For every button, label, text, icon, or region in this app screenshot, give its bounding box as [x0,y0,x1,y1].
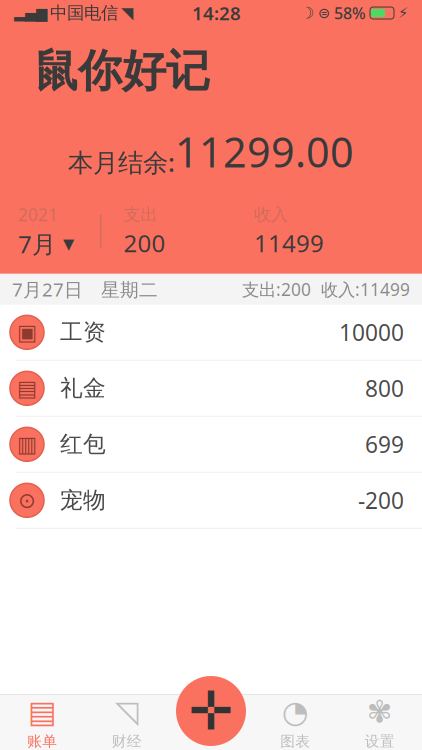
button[interactable]: ✾ [337,695,422,750]
staticText: 账单 [27,732,57,750]
staticText: 7月 [18,228,56,260]
staticText: 支出:200 收入:11499 [242,278,410,301]
button[interactable]: Add entry [176,676,246,746]
staticText: ▥ [17,432,37,456]
staticText: 财经 [112,732,142,750]
staticText: 7月27日 星期二 [12,277,158,302]
staticText: 支出 [123,204,157,225]
button[interactable]: ▤ [0,361,422,417]
staticText: 11499 [254,227,324,259]
staticText: ▼ [63,236,74,252]
button[interactable]: ▣ [0,305,422,361]
staticText: -200 [358,485,404,515]
staticText: 红包 [60,430,106,458]
staticText: ▤ [28,695,57,729]
staticText: ⊙ [18,488,36,512]
staticText: 699 [365,429,404,459]
button[interactable]: ◹ [84,695,169,750]
staticText: ✛ [188,681,233,741]
staticText: 礼金 [60,374,106,402]
staticText: ✾ [367,695,393,729]
staticText: 收入 [254,204,288,225]
staticText: 中国电信 [50,2,118,24]
staticText: ◔ [282,695,309,729]
staticText: ◥ [121,4,133,22]
staticText: 本月结余: [68,145,175,179]
staticText: 宠物 [60,486,106,514]
button[interactable]: ▤ [0,695,84,750]
button[interactable]: 7月 [18,228,74,260]
staticText: ▂▄▆ [14,5,47,21]
staticText: ⚡︎ [398,5,408,21]
button[interactable]: ⊙ [0,473,422,529]
staticText: 14:28 [192,1,241,25]
staticText: 2021 [18,203,58,226]
staticText: ▣ [17,320,37,344]
staticText: 鼠你好记 [34,44,210,98]
staticText: 设置 [365,732,395,750]
staticText: 200 [123,227,165,259]
staticText: 工资 [60,318,106,346]
staticText: 11299.00 [175,124,354,179]
staticText: ⊜ [318,5,330,21]
staticText: 800 [365,373,404,403]
staticText: ☽ [300,4,314,22]
staticText: 58% [334,2,366,24]
staticText: ◹ [115,695,139,729]
staticText: 10000 [339,317,404,347]
staticText: 图表 [280,732,310,750]
button[interactable]: ▥ [0,417,422,473]
button[interactable]: ◔ [253,695,337,750]
staticText: ▤ [17,376,37,400]
